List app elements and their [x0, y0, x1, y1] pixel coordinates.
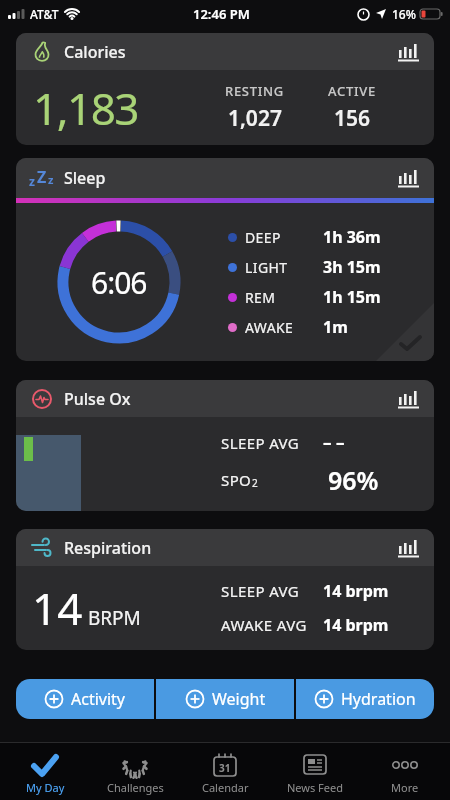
staticText: 96%: [328, 463, 379, 497]
staticText: SPO: [221, 470, 252, 490]
staticText: 156: [334, 104, 371, 133]
staticText: SLEEP AVG: [221, 581, 323, 601]
button[interactable]: Challenges: [90, 752, 180, 795]
staticText: 14: [32, 578, 83, 638]
staticText: 1,027: [228, 104, 282, 133]
staticText: z: [48, 172, 54, 187]
staticText: Pulse Ox: [64, 388, 131, 410]
staticText: Sleep: [64, 167, 106, 189]
button[interactable]: 31: [180, 752, 270, 795]
staticText: ACTIVE: [328, 82, 376, 100]
staticText: Activity: [71, 688, 126, 710]
staticText: Z: [37, 166, 47, 188]
button[interactable]: Respiration: [16, 529, 434, 650]
staticText: 1h 36m: [323, 226, 381, 248]
button[interactable]: Weight: [156, 679, 294, 719]
staticText: 31: [219, 761, 231, 775]
button[interactable]: My Day: [0, 752, 90, 795]
staticText: DEEP: [245, 228, 323, 247]
staticText: AWAKE AVG: [221, 615, 323, 635]
staticText: RESTING: [225, 82, 284, 100]
staticText: 14 brpm: [323, 580, 389, 602]
button[interactable]: Calories: [16, 33, 434, 145]
staticText: REM: [245, 288, 323, 307]
staticText: BRPM: [83, 605, 141, 631]
button[interactable]: z: [16, 158, 434, 361]
staticText: 12:46 PM: [193, 5, 250, 23]
button[interactable]: Activity: [16, 679, 154, 719]
staticText: 14 brpm: [323, 614, 389, 636]
staticText: 1,183: [33, 78, 138, 138]
staticText: Respiration: [64, 537, 152, 559]
staticText: – –: [323, 431, 345, 454]
staticText: Calories: [64, 41, 126, 63]
staticText: 3h 15m: [323, 256, 381, 278]
staticText: z: [29, 173, 35, 189]
staticText: 1m: [323, 316, 348, 338]
button[interactable]: News Feed: [270, 752, 360, 795]
staticText: 16%: [392, 6, 416, 22]
staticText: 6:06: [91, 262, 147, 303]
button[interactable]: Pulse Ox: [16, 380, 434, 511]
staticText: My Day: [26, 780, 65, 795]
staticText: 1h 15m: [323, 286, 381, 308]
staticText: Calendar: [202, 780, 249, 795]
staticText: Challenges: [107, 780, 164, 795]
staticText: Weight: [212, 688, 266, 710]
staticText: SLEEP AVG: [221, 433, 323, 453]
staticText: 2: [252, 476, 258, 490]
button[interactable]: More: [360, 752, 450, 795]
staticText: AT&T: [30, 6, 59, 22]
staticText: LIGHT: [245, 258, 323, 277]
staticText: Hydration: [341, 688, 416, 710]
staticText: AWAKE: [245, 318, 323, 337]
staticText: More: [391, 780, 419, 795]
button[interactable]: Hydration: [296, 679, 434, 719]
staticText: News Feed: [287, 780, 344, 795]
